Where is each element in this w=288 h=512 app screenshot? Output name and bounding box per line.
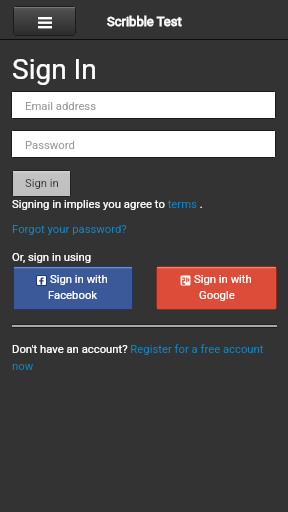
- staticText: Don't have an account? Register for a fr…: [12, 343, 278, 373]
- button[interactable]: Sign in with: [157, 267, 276, 309]
- button[interactable]: Password: [12, 131, 275, 157]
- staticText: Signing in implies you agree to terms .: [12, 198, 203, 211]
- button[interactable]: Toggle navigation menu: [14, 7, 75, 35]
- staticText: Scribble Test: [107, 14, 182, 29]
- staticText: Or, sign in using: [12, 251, 92, 264]
- button[interactable]: Sign in: [13, 171, 70, 196]
- staticText: Sign in with: [194, 273, 252, 286]
- staticText: Facebook: [48, 289, 98, 302]
- staticText: Google: [199, 289, 235, 302]
- staticText: Sign in: [25, 177, 59, 190]
- button[interactable]: Sign in with: [14, 267, 132, 309]
- staticText: Password: [25, 139, 75, 152]
- staticText: Email address: [25, 100, 97, 113]
- button[interactable]: Forgot your password?: [12, 223, 127, 236]
- staticText: Sign In: [12, 53, 97, 86]
- staticText: Sign in with: [50, 273, 108, 286]
- button[interactable]: Email address: [12, 92, 275, 118]
